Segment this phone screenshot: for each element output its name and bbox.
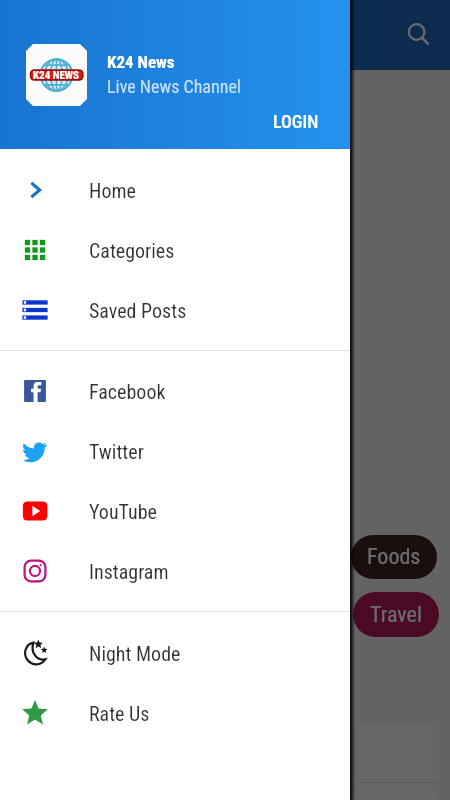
staticText: Home <box>89 179 136 202</box>
button[interactable]: Rate Us <box>0 683 350 743</box>
staticText: Live News Channel <box>107 76 241 97</box>
button[interactable]: Categories <box>0 220 350 280</box>
button[interactable]: Facebook <box>0 361 350 421</box>
staticText: Night Mode <box>89 642 181 665</box>
staticText: Categories <box>89 239 175 262</box>
staticText: Foods <box>367 544 421 570</box>
button[interactable]: Night Mode <box>0 623 350 683</box>
staticText: YouTube <box>89 500 157 523</box>
staticText: LOGIN <box>273 111 319 132</box>
staticText: Twitter <box>89 440 144 463</box>
button[interactable]: YouTube <box>0 481 350 541</box>
button[interactable]: Travel <box>353 592 439 637</box>
staticText: Instagram <box>89 560 169 583</box>
button[interactable]: Saved Posts <box>0 280 350 340</box>
staticText: Travel <box>370 602 422 628</box>
button[interactable]: Search <box>404 20 434 50</box>
button[interactable]: Twitter <box>0 421 350 481</box>
staticText: Saved Posts <box>89 299 187 322</box>
staticText: Facebook <box>89 380 166 403</box>
button[interactable]: LOGIN <box>263 101 329 142</box>
staticText: K24 NEWS <box>33 69 80 82</box>
button[interactable]: Instagram <box>0 541 350 601</box>
staticText: K24 News <box>107 52 175 72</box>
staticText: Rate Us <box>89 702 150 725</box>
button[interactable]: Home <box>0 160 350 220</box>
button[interactable]: Foods <box>351 535 437 579</box>
